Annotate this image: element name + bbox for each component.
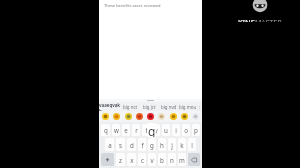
button[interactable]: o bbox=[182, 124, 190, 136]
button[interactable]: a bbox=[105, 138, 114, 151]
button[interactable] bbox=[169, 112, 178, 121]
button[interactable]: e bbox=[122, 124, 130, 136]
staticText: MASTER bbox=[255, 17, 282, 22]
staticText: big mou bbox=[179, 104, 197, 110]
button[interactable]: v bbox=[148, 153, 156, 166]
button[interactable]: d bbox=[127, 138, 136, 151]
button[interactable]: z bbox=[116, 153, 125, 166]
button[interactable]: h bbox=[158, 138, 166, 151]
button[interactable]: More suggestions bbox=[197, 102, 202, 111]
button[interactable]: p bbox=[192, 124, 200, 136]
staticText: t bbox=[145, 126, 148, 134]
button[interactable]: x bbox=[127, 153, 136, 166]
button[interactable] bbox=[101, 112, 110, 121]
staticText: o bbox=[184, 126, 188, 134]
staticText: j bbox=[171, 141, 173, 149]
staticText: y bbox=[154, 126, 158, 134]
button[interactable]: Shift bbox=[101, 153, 114, 166]
button[interactable]: big jct bbox=[140, 102, 159, 111]
button[interactable]: g bbox=[148, 138, 156, 151]
button[interactable]: m bbox=[178, 153, 186, 166]
button[interactable] bbox=[146, 112, 155, 121]
button[interactable]: c bbox=[138, 153, 146, 166]
staticText: x bbox=[130, 156, 134, 164]
button[interactable]: Resize keyboard bbox=[147, 100, 154, 101]
button[interactable]: t bbox=[142, 124, 150, 136]
staticText: KINE bbox=[238, 17, 255, 22]
staticText: v bbox=[150, 156, 154, 164]
staticText: r bbox=[135, 126, 138, 134]
button[interactable] bbox=[135, 112, 144, 121]
staticText: big jct bbox=[143, 104, 156, 110]
staticText: u bbox=[164, 126, 168, 134]
button[interactable] bbox=[112, 112, 121, 121]
button[interactable]: l bbox=[188, 138, 196, 151]
staticText: k bbox=[180, 141, 184, 149]
staticText: n bbox=[170, 156, 174, 164]
button[interactable]: vaaeqvakb bbox=[99, 102, 121, 111]
button[interactable]: b bbox=[158, 153, 166, 166]
staticText: These benefits cases reviewed bbox=[104, 3, 161, 8]
staticText: f bbox=[141, 141, 144, 149]
staticText: c bbox=[141, 156, 144, 164]
button[interactable]: u bbox=[162, 124, 170, 136]
button[interactable] bbox=[191, 112, 200, 121]
staticText: q bbox=[104, 126, 108, 134]
staticText: p bbox=[194, 126, 198, 134]
button[interactable]: s bbox=[116, 138, 125, 151]
button[interactable]: j bbox=[168, 138, 176, 151]
button[interactable]: big nvd bbox=[159, 102, 178, 111]
button[interactable]: w bbox=[112, 124, 120, 136]
button[interactable]: f bbox=[138, 138, 146, 151]
staticText: i bbox=[175, 126, 177, 134]
staticText: h bbox=[160, 141, 164, 149]
button[interactable]: i bbox=[172, 124, 180, 136]
button[interactable]: k bbox=[178, 138, 186, 151]
staticText: s bbox=[119, 141, 122, 149]
staticText: vaaeqvakb bbox=[99, 102, 121, 111]
button[interactable] bbox=[180, 112, 189, 121]
staticText: m bbox=[179, 156, 185, 164]
staticText: big nct bbox=[123, 104, 138, 110]
button[interactable]: q bbox=[101, 124, 110, 136]
button[interactable]: big mou bbox=[178, 102, 197, 111]
staticText: g bbox=[148, 123, 156, 137]
staticText: big nvd bbox=[161, 104, 177, 110]
button[interactable]: y bbox=[152, 124, 160, 136]
button[interactable] bbox=[124, 112, 133, 121]
staticText: l bbox=[191, 141, 193, 149]
staticText: g bbox=[150, 141, 154, 149]
staticText: : bbox=[199, 104, 201, 110]
staticText: d bbox=[130, 141, 134, 149]
button[interactable]: n bbox=[168, 153, 176, 166]
staticText: w bbox=[114, 126, 119, 134]
staticText: e bbox=[124, 126, 128, 134]
staticText: b bbox=[160, 156, 164, 164]
button[interactable]: r bbox=[132, 124, 140, 136]
staticText: z bbox=[119, 156, 122, 164]
staticText: a bbox=[108, 141, 112, 149]
button[interactable] bbox=[157, 112, 166, 121]
button[interactable]: big nct bbox=[121, 102, 140, 111]
button[interactable]: Backspace bbox=[188, 153, 200, 166]
